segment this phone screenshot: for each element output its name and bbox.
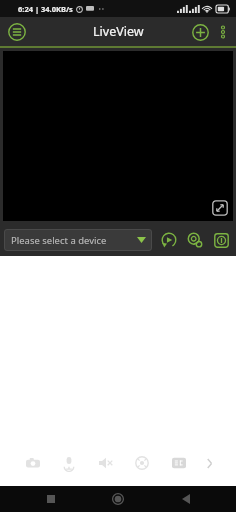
- button[interactable]: PTZ control: [184, 229, 206, 251]
- button[interactable]: Recent apps: [34, 486, 68, 512]
- button[interactable]: Add device: [187, 19, 213, 45]
- button[interactable]: Playback: [158, 229, 180, 251]
- button[interactable]: Stream quality SD: [165, 448, 193, 478]
- button[interactable]: Back: [169, 486, 203, 512]
- staticText: 6:24 | 34.0KB/s: [18, 4, 73, 14]
- staticText: Please select a device: [11, 234, 137, 247]
- button[interactable]: Full screen: [212, 200, 228, 216]
- button[interactable]: Take snapshot: [19, 448, 47, 478]
- button[interactable]: Please select a device: [4, 229, 152, 251]
- button[interactable]: Audio off: [92, 448, 120, 478]
- button[interactable]: Open navigation menu: [4, 19, 30, 45]
- button[interactable]: Home: [101, 486, 135, 512]
- button[interactable]: More tools: [201, 448, 217, 478]
- button[interactable]: Talk back: [55, 448, 83, 478]
- staticText: LiveView: [93, 23, 144, 40]
- button[interactable]: Focus: [128, 448, 156, 478]
- button[interactable]: More options: [213, 22, 233, 42]
- button[interactable]: Split screen layout: [210, 229, 232, 251]
